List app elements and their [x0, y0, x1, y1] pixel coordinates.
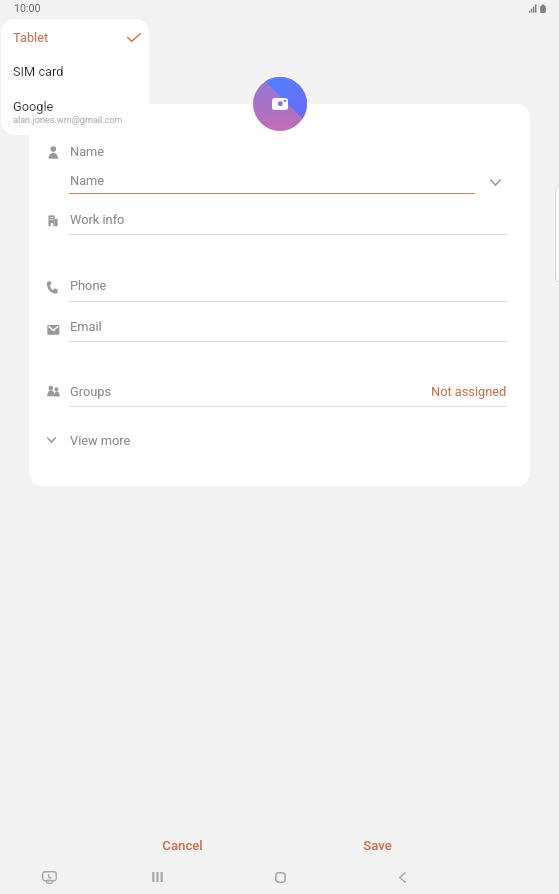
staticText: Email — [70, 319, 102, 334]
button[interactable]: Recent apps — [139, 859, 175, 894]
button[interactable]: Back — [384, 859, 420, 894]
button[interactable]: Show on screen — [31, 859, 67, 894]
staticText: Cancel — [162, 838, 203, 853]
staticText: Groups — [70, 384, 112, 399]
button[interactable]: Save — [332, 827, 422, 863]
button[interactable] — [1, 57, 149, 91]
button[interactable] — [40, 271, 510, 301]
staticText: Google — [13, 99, 54, 114]
staticText: View more — [70, 433, 131, 448]
staticText: Not assigned — [431, 384, 507, 399]
button[interactable] — [56, 168, 490, 202]
staticText: Name — [70, 144, 105, 159]
button[interactable] — [40, 424, 140, 456]
staticText: Save — [363, 838, 392, 853]
button[interactable] — [40, 205, 510, 235]
button[interactable]: Add contact photo — [253, 77, 307, 131]
button[interactable] — [1, 19, 149, 57]
button[interactable] — [1, 91, 149, 135]
button[interactable] — [40, 378, 510, 408]
staticText: Tablet — [13, 30, 49, 45]
staticText: SIM card — [13, 64, 64, 79]
staticText: Phone — [70, 278, 107, 293]
button[interactable] — [40, 312, 510, 342]
staticText: Name — [70, 173, 105, 188]
staticText: alan.jones.wm@gmail.com — [13, 115, 123, 126]
staticText: Work info — [70, 212, 125, 227]
button[interactable]: Cancel — [137, 827, 227, 863]
button[interactable]: Home — [262, 859, 298, 894]
staticText: 10:00 — [14, 2, 41, 14]
button[interactable]: Expand name fields — [483, 170, 508, 195]
